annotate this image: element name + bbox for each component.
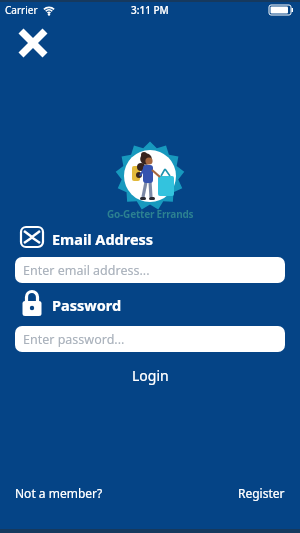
staticText: Login xyxy=(132,366,169,385)
staticText: Not a member? xyxy=(15,485,103,501)
button[interactable]: Enter password... xyxy=(15,326,285,352)
button[interactable]: Enter email address... xyxy=(15,257,285,283)
staticText: Email Address xyxy=(52,229,154,249)
staticText: Register xyxy=(238,485,285,501)
staticText: Enter email address... xyxy=(23,262,150,279)
button[interactable]: Register xyxy=(238,485,285,501)
button[interactable]: Not a member? xyxy=(15,485,103,501)
button[interactable]: Login xyxy=(118,360,183,391)
staticText: Password xyxy=(52,295,122,315)
staticText: 3:11 PM xyxy=(131,3,169,17)
staticText: Enter password... xyxy=(23,331,125,348)
staticText: Go-Getter Errands xyxy=(107,207,194,221)
button[interactable] xyxy=(14,24,52,62)
staticText: Carrier xyxy=(5,3,38,17)
